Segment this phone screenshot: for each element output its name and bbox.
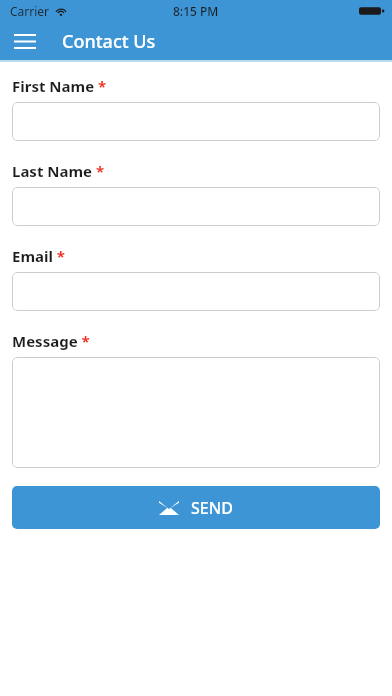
button[interactable]	[12, 357, 380, 468]
staticText: Last Name *	[12, 161, 105, 181]
staticText: Message *	[12, 331, 90, 351]
staticText: Carrier	[10, 3, 50, 19]
button[interactable]: Open navigation menu	[8, 24, 42, 58]
staticText: SEND	[191, 497, 233, 519]
button[interactable]	[12, 187, 380, 226]
staticText: Contact Us	[62, 29, 156, 54]
staticText: 8:15 PM	[173, 3, 219, 19]
button[interactable]	[12, 102, 380, 141]
staticText: First Name *	[12, 76, 107, 96]
button[interactable]: SEND	[12, 486, 380, 529]
staticText: Email *	[12, 246, 65, 266]
button[interactable]	[12, 272, 380, 311]
